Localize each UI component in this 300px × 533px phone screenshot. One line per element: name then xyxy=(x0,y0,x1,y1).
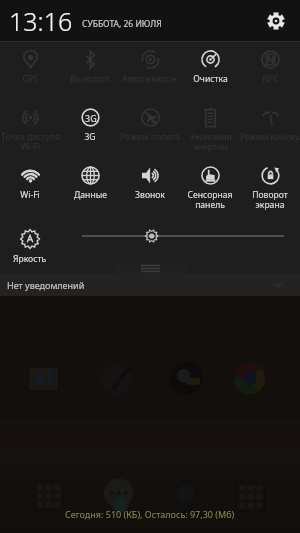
staticText: Экономия энергии xyxy=(189,131,232,152)
staticText: 13:16 xyxy=(9,4,73,38)
button[interactable]: Settings xyxy=(260,5,292,37)
button[interactable]: Экономия энергии xyxy=(180,100,240,158)
button[interactable]: 3G xyxy=(60,100,120,158)
button[interactable]: Данные xyxy=(60,158,120,216)
button[interactable] xyxy=(231,477,269,515)
button[interactable] xyxy=(29,476,67,514)
staticText: Сегодня: 510 (КБ), Осталось: 97,30 (Мб) xyxy=(65,508,235,520)
button[interactable] xyxy=(113,263,187,274)
button[interactable]: Режим полета xyxy=(120,100,180,158)
button[interactable]: NFC xyxy=(240,42,300,100)
staticText: Точка доступа Wi-Fi xyxy=(1,131,60,152)
staticText: Очистка xyxy=(193,73,228,85)
button[interactable] xyxy=(166,476,204,514)
staticText: 3G xyxy=(85,112,97,124)
staticText: Звонок xyxy=(135,189,165,201)
button[interactable]: Поворот экрана xyxy=(240,158,300,216)
staticText: Автосинхрон. xyxy=(122,73,179,85)
staticText: Режим полета xyxy=(120,131,180,143)
button[interactable]: Автосинхрон. xyxy=(120,42,180,100)
staticText: 3G xyxy=(84,131,96,143)
button[interactable]: Сенсорная панель xyxy=(180,158,240,216)
button[interactable] xyxy=(82,230,284,250)
button[interactable] xyxy=(230,359,268,397)
button[interactable]: Яркость xyxy=(0,216,60,265)
button[interactable]: Очистка xyxy=(180,42,240,100)
button[interactable] xyxy=(24,359,62,397)
staticText: Сенсорная панель xyxy=(187,189,233,210)
staticText: Wi-Fi xyxy=(20,189,40,201)
staticText: Bluetooth xyxy=(70,73,110,85)
staticText: СУББОТА, 26 ИЮЛЯ xyxy=(82,18,162,30)
staticText: Яркость xyxy=(13,253,47,265)
button[interactable]: Wi-Fi xyxy=(0,158,60,216)
button[interactable]: Точка доступа Wi-Fi xyxy=(0,100,60,158)
button[interactable] xyxy=(99,475,137,513)
button[interactable]: Нет уведомлений xyxy=(0,274,300,296)
staticText: Нет уведомлений xyxy=(7,279,85,291)
staticText: Поворот экрана xyxy=(252,189,288,210)
button[interactable]: Режим каникул xyxy=(240,100,300,158)
staticText: NFC xyxy=(262,73,279,85)
staticText: GPS xyxy=(22,73,39,85)
staticText: Режим каникул xyxy=(240,131,300,143)
staticText: Данные xyxy=(74,189,107,201)
button[interactable] xyxy=(167,359,205,397)
button[interactable]: GPS xyxy=(0,42,60,100)
button[interactable]: Bluetooth xyxy=(60,42,120,100)
button[interactable]: Звонок xyxy=(120,158,180,216)
